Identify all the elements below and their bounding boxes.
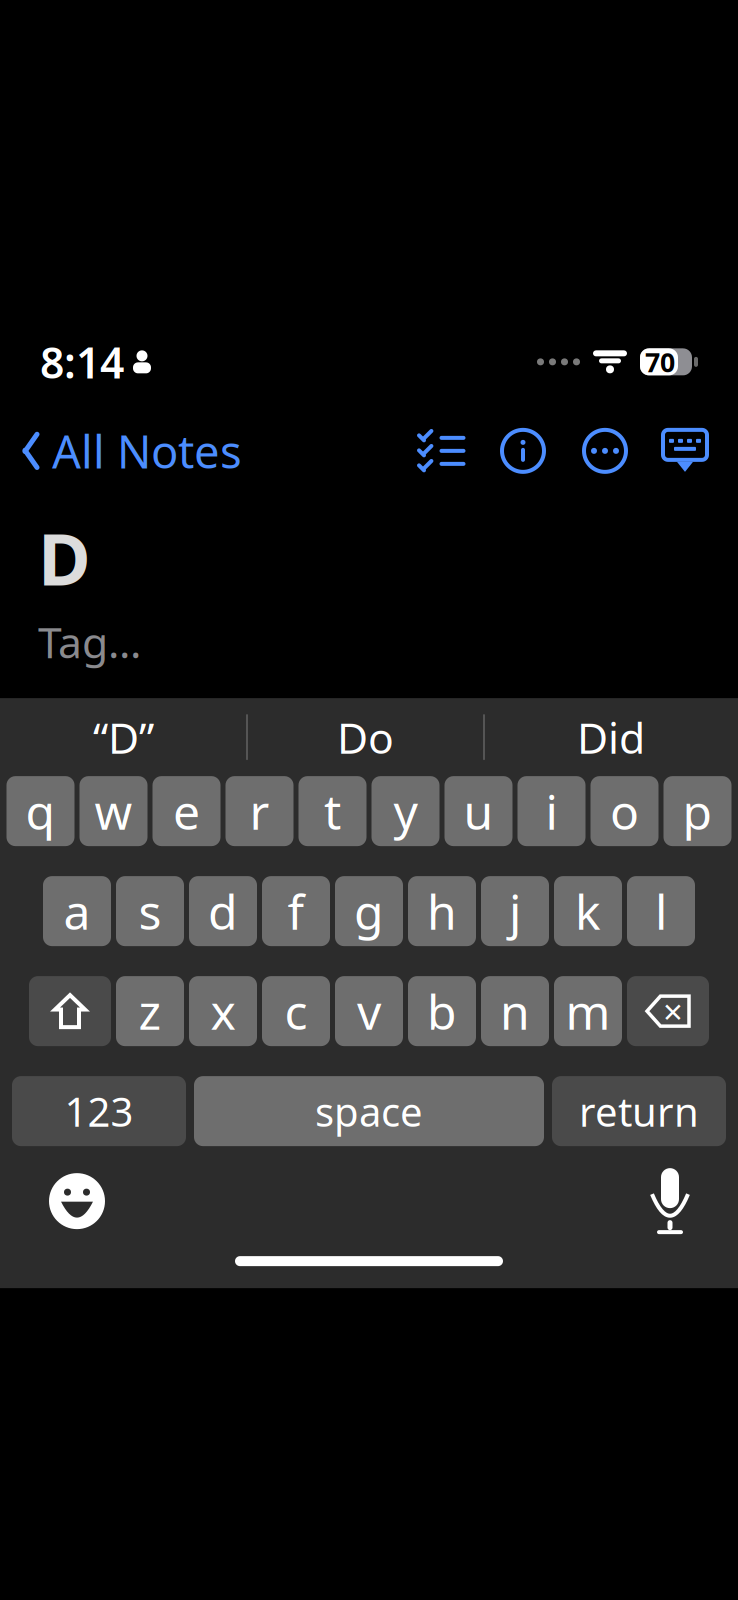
button[interactable]: Shift	[29, 976, 111, 1046]
button[interactable]: b	[408, 976, 476, 1046]
staticText: c	[284, 979, 307, 1043]
staticText: l	[655, 879, 667, 943]
staticText: v	[357, 979, 381, 1043]
staticText: e	[173, 779, 200, 843]
staticText: “D”	[93, 709, 154, 765]
button[interactable]: l	[627, 876, 695, 946]
staticText: d	[208, 879, 238, 943]
staticText: z	[138, 979, 161, 1043]
button[interactable]: o	[590, 776, 658, 846]
staticText: o	[610, 779, 639, 843]
button[interactable]: q	[6, 776, 74, 846]
button[interactable]: d	[189, 876, 257, 946]
button[interactable]: e	[152, 776, 220, 846]
button[interactable]: Checklist	[400, 432, 482, 470]
button[interactable]: Hide Keyboard	[646, 428, 724, 474]
button[interactable]: space	[194, 1076, 544, 1146]
button[interactable]: f	[262, 876, 330, 946]
button[interactable]: c	[262, 976, 330, 1046]
staticText: m	[565, 979, 610, 1043]
staticText: f	[287, 879, 304, 943]
button[interactable]: g	[335, 876, 403, 946]
button[interactable]: Delete	[627, 976, 709, 1046]
button[interactable]: return	[552, 1076, 726, 1146]
button[interactable]: Did	[485, 704, 737, 770]
staticText: k	[575, 879, 601, 943]
button[interactable]: z	[116, 976, 184, 1046]
staticText: j	[509, 879, 521, 943]
button[interactable]: r	[225, 776, 293, 846]
button[interactable]: v	[335, 976, 403, 1046]
button[interactable]: h	[408, 876, 476, 946]
button[interactable]: t	[298, 776, 366, 846]
button[interactable]: Info	[482, 428, 564, 474]
button[interactable]: s	[116, 876, 184, 946]
staticText: a	[63, 879, 90, 943]
staticText: y	[393, 779, 417, 843]
staticText: i	[545, 779, 557, 843]
staticText: 70	[645, 344, 675, 380]
staticText: Did	[577, 709, 645, 765]
staticText: b	[427, 979, 457, 1043]
staticText: x	[210, 979, 235, 1043]
staticText: ×	[663, 988, 683, 1034]
staticText: w	[94, 779, 132, 843]
staticText: u	[463, 779, 493, 843]
button[interactable]: u	[444, 776, 512, 846]
staticText: 8:14	[40, 333, 124, 390]
button[interactable]: y	[371, 776, 439, 846]
button[interactable]: Dictation	[650, 1166, 690, 1236]
button[interactable]: a	[43, 876, 111, 946]
button[interactable]: x	[189, 976, 257, 1046]
staticText: r	[249, 779, 269, 843]
button[interactable]: w	[79, 776, 147, 846]
staticText: Tag...	[38, 613, 141, 670]
button[interactable]: m	[554, 976, 622, 1046]
button[interactable]: 123	[12, 1076, 186, 1146]
staticText: h	[427, 879, 457, 943]
button[interactable]: “D”	[1, 704, 246, 770]
staticText: space	[315, 1085, 423, 1138]
button[interactable]: All Notes	[0, 413, 242, 489]
staticText: 123	[64, 1085, 133, 1138]
button[interactable]: n	[481, 976, 549, 1046]
staticText: All Notes	[52, 421, 242, 481]
staticText: n	[500, 979, 530, 1043]
button[interactable]: Emoji	[48, 1172, 106, 1230]
staticText: D	[38, 510, 91, 605]
staticText: q	[25, 779, 55, 843]
staticText: p	[682, 779, 712, 843]
button[interactable]: i	[517, 776, 585, 846]
button[interactable]: j	[481, 876, 549, 946]
button[interactable]: More	[564, 428, 646, 474]
button[interactable]: k	[554, 876, 622, 946]
button[interactable]: p	[663, 776, 731, 846]
button[interactable]: Do	[248, 704, 483, 770]
staticText: g	[354, 879, 384, 943]
staticText: t	[324, 779, 341, 843]
staticText: s	[138, 879, 161, 943]
staticText: Do	[337, 709, 394, 765]
staticText: return	[579, 1085, 699, 1138]
